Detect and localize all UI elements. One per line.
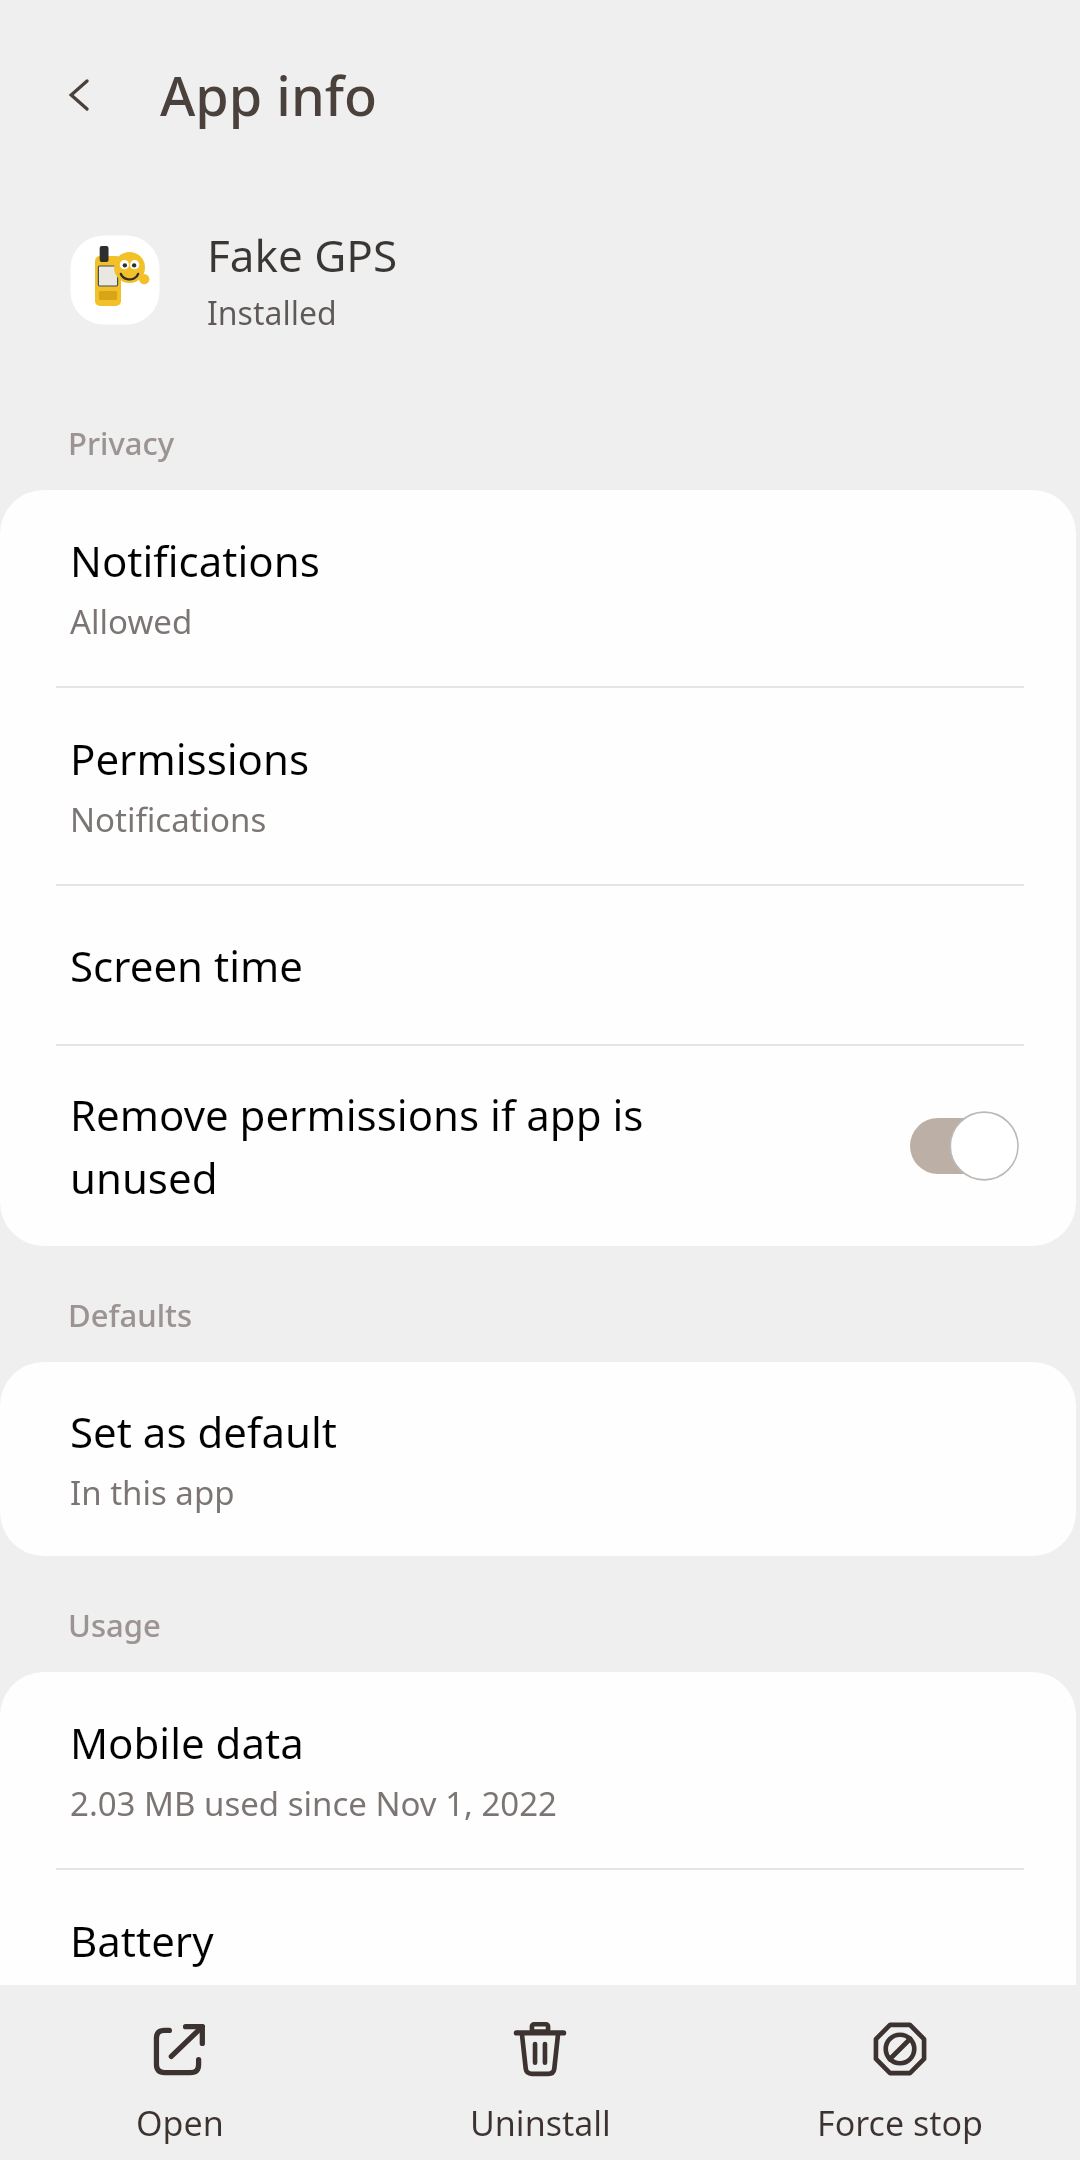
staticText: Open (136, 2100, 224, 2146)
button[interactable]: Remove permissions if app is (0, 1046, 1076, 1246)
staticText: App info (160, 58, 378, 132)
button[interactable]: Battery (0, 1870, 1076, 2066)
button[interactable]: Open (0, 2000, 360, 2146)
button[interactable]: Mobile data (0, 1672, 1076, 1868)
staticText: Privacy (68, 422, 175, 464)
staticText: unused (70, 1149, 218, 1206)
staticText: Installed (207, 291, 337, 335)
button[interactable]: Screen time (0, 886, 1076, 1044)
staticText: Force stop (817, 2100, 983, 2146)
staticText: Set as default (70, 1403, 337, 1460)
button[interactable]: Remove permissions toggle (910, 1110, 1018, 1182)
button[interactable]: Fake GPS (0, 190, 1080, 370)
staticText: Defaults (68, 1294, 192, 1336)
button[interactable]: Uninstall (360, 2000, 720, 2146)
staticText: Uninstall (470, 2100, 611, 2146)
staticText: Mobile data (70, 1714, 304, 1771)
staticText: Allowed (70, 599, 193, 644)
button[interactable]: Back (48, 63, 112, 127)
staticText: Battery (70, 1912, 214, 1969)
staticText: Notifications (70, 532, 320, 589)
staticText: In this app (70, 1470, 235, 1515)
staticText: 0% used since last fully charged (70, 1979, 562, 2024)
staticText: Usage (68, 1604, 161, 1646)
staticText: Screen time (70, 937, 303, 994)
button[interactable]: Permissions (0, 688, 1076, 884)
staticText: Notifications (70, 797, 267, 842)
button[interactable]: Notifications (0, 490, 1076, 686)
staticText: 2.03 MB used since Nov 1, 2022 (70, 1781, 557, 1826)
staticText: Remove permissions if app is (70, 1086, 644, 1143)
button[interactable]: Set as default (0, 1362, 1076, 1556)
staticText: Fake GPS (207, 225, 398, 285)
staticText: Permissions (70, 730, 310, 787)
button[interactable]: Force stop (720, 2000, 1080, 2146)
